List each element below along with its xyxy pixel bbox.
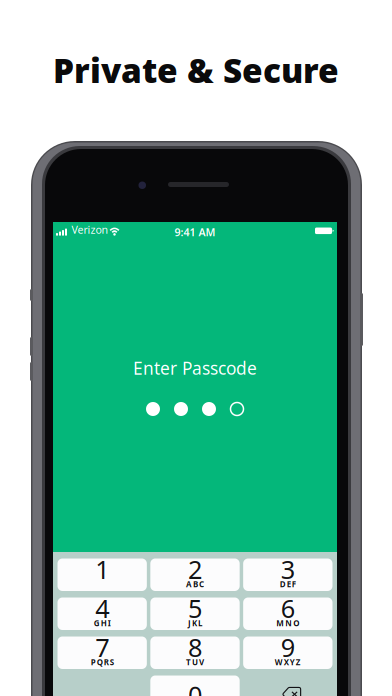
staticText: J K L xyxy=(188,618,202,628)
staticText: 8 xyxy=(188,630,202,664)
button[interactable]: 6 xyxy=(243,597,332,630)
staticText: Private & Secure xyxy=(53,48,339,92)
staticText: A B C xyxy=(186,579,204,589)
button[interactable]: 2 xyxy=(150,558,240,591)
staticText: G H I xyxy=(94,618,111,628)
button[interactable]: 5 xyxy=(150,597,240,630)
staticText: 2 xyxy=(188,552,202,586)
staticText: 1 xyxy=(95,552,109,586)
staticText: T U V xyxy=(186,657,204,667)
staticText: D E F xyxy=(280,579,296,589)
button[interactable]: 9 xyxy=(243,636,332,669)
staticText: 4 xyxy=(95,591,109,625)
staticText: 9 xyxy=(281,630,295,664)
staticText: 3 xyxy=(281,552,295,586)
staticText: 5 xyxy=(188,591,202,625)
button[interactable]: 3 xyxy=(243,558,332,591)
staticText: P Q R S xyxy=(91,657,114,667)
staticText: 7 xyxy=(95,630,109,664)
button[interactable] xyxy=(243,675,332,696)
staticText: 6 xyxy=(281,591,295,625)
staticText: Verizon xyxy=(71,222,108,237)
button[interactable]: 8 xyxy=(150,636,240,669)
staticText: Enter Passcode xyxy=(133,356,257,379)
staticText: 0 xyxy=(188,678,202,696)
staticText: 9:41 AM xyxy=(174,225,215,239)
staticText: W X Y Z xyxy=(275,657,301,667)
button[interactable]: 4 xyxy=(57,597,147,630)
button[interactable]: 0 xyxy=(150,675,240,696)
button[interactable]: 7 xyxy=(57,636,147,669)
button[interactable]: 1 xyxy=(57,558,147,591)
staticText: M N O xyxy=(276,618,299,628)
